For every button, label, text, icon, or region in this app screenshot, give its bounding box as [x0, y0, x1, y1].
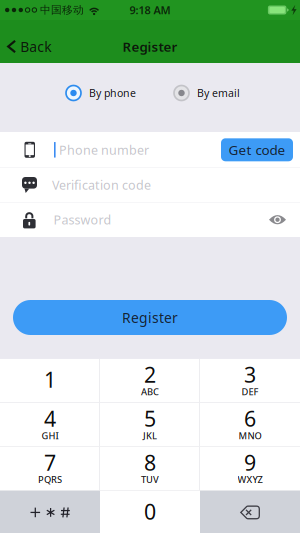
staticText: By email	[197, 86, 240, 100]
staticText: MNO	[238, 429, 261, 442]
staticText: ABC	[141, 385, 159, 398]
button[interactable]: Delete	[200, 491, 300, 533]
button[interactable]: 4	[0, 403, 100, 446]
button[interactable]: 8	[100, 447, 200, 490]
staticText: Get code	[228, 141, 285, 159]
button[interactable]: 0	[100, 491, 200, 533]
staticText: Phone number	[59, 141, 149, 158]
button[interactable]: 7	[0, 447, 100, 490]
staticText: PQRS	[38, 473, 62, 486]
button[interactable]: Symbols	[0, 491, 100, 533]
staticText: 9	[244, 448, 256, 477]
button[interactable]: By email	[174, 79, 240, 106]
staticText: 2	[144, 360, 156, 389]
staticText: 0	[144, 497, 156, 526]
staticText: JKL	[143, 429, 157, 442]
staticText: 7	[44, 448, 56, 477]
staticText: TUV	[141, 473, 159, 486]
button[interactable]: 1	[0, 359, 100, 402]
button[interactable]: Back	[0, 32, 59, 61]
staticText: By phone	[89, 86, 136, 100]
staticText: Password	[54, 211, 112, 228]
staticText: GHI	[41, 429, 58, 442]
button[interactable]: 5	[100, 403, 200, 446]
staticText: WXYZ	[237, 473, 262, 486]
staticText: Back	[20, 37, 51, 56]
staticText: Register	[122, 37, 177, 56]
staticText: Verification code	[52, 176, 151, 194]
button[interactable]: 6	[200, 403, 300, 446]
staticText: 6	[244, 404, 256, 433]
staticText: 5	[144, 404, 156, 433]
staticText: 1	[44, 365, 56, 394]
button[interactable]: Show password	[263, 207, 292, 232]
staticText: DEF	[241, 385, 258, 398]
button[interactable]: Register	[13, 300, 287, 335]
button[interactable]: 9	[200, 447, 300, 490]
staticText: 9:18 AM	[129, 3, 170, 17]
staticText: 中国移动	[40, 3, 84, 17]
button[interactable]: 2	[100, 359, 200, 402]
staticText: Register	[122, 308, 178, 327]
staticText: 4	[44, 404, 56, 433]
button[interactable]: By phone	[66, 79, 136, 106]
staticText: 8	[144, 448, 156, 477]
button[interactable]: Get code	[221, 138, 293, 161]
staticText: 3	[244, 360, 256, 389]
button[interactable]: 3	[200, 359, 300, 402]
